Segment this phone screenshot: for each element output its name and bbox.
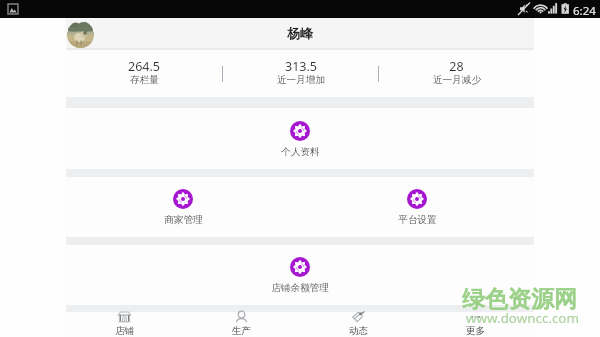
staticText: 264.5: [128, 58, 160, 75]
staticText: 更多: [466, 325, 486, 336]
staticText: 近一月减少: [433, 74, 481, 86]
staticText: 杨峰: [287, 25, 313, 41]
button[interactable]: 商家管理: [66, 177, 300, 237]
button[interactable]: 264.5: [66, 50, 222, 97]
staticText: 生产: [232, 325, 252, 336]
staticText: 店铺余额管理: [271, 282, 329, 294]
button[interactable]: 313.5: [223, 50, 378, 97]
button[interactable]: 个人资料: [66, 108, 534, 169]
staticText: 商家管理: [164, 214, 203, 226]
button[interactable]: 杨峰: [66, 18, 534, 48]
staticText: www.downcc.com: [466, 309, 579, 327]
button[interactable]: 动态: [300, 311, 417, 336]
other: Screenshot: [8, 4, 18, 14]
staticText: 动态: [349, 325, 369, 336]
button[interactable]: 平台设置: [300, 177, 534, 237]
staticText: 平台设置: [398, 214, 437, 226]
staticText: 近一月增加: [277, 74, 325, 86]
button[interactable]: 28: [379, 50, 534, 97]
staticText: 店铺: [115, 325, 135, 336]
button[interactable]: 店铺: [66, 311, 183, 336]
staticText: 个人资料: [281, 146, 320, 158]
staticText: 313.5: [285, 58, 317, 75]
staticText: 28: [449, 58, 464, 75]
staticText: 绿色资源网: [462, 285, 577, 314]
button[interactable]: 店铺余额管理: [66, 245, 534, 305]
staticText: 6:24: [573, 3, 596, 19]
staticText: 存栏量: [130, 74, 159, 86]
button[interactable]: 生产: [183, 311, 300, 336]
button[interactable]: 更多: [417, 311, 534, 336]
